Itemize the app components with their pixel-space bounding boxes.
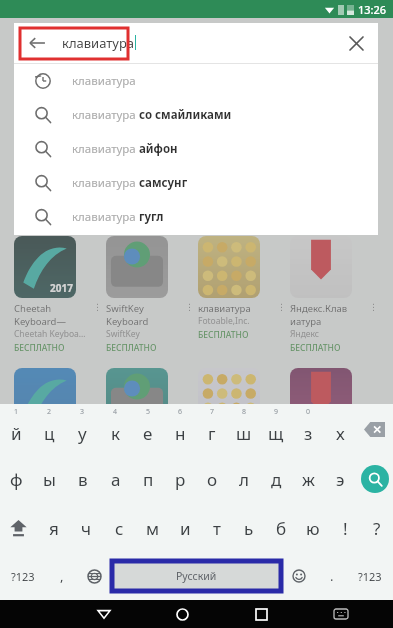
button[interactable]: в xyxy=(66,454,99,504)
button[interactable]: Emoji xyxy=(281,552,316,600)
button[interactable]: я xyxy=(37,504,70,552)
button[interactable]: х xyxy=(324,404,356,454)
button[interactable]: Back xyxy=(14,23,378,63)
staticText: а xyxy=(111,468,121,491)
staticText: я xyxy=(49,517,59,540)
button[interactable]: 5 xyxy=(132,404,164,454)
staticText: х xyxy=(336,422,345,445)
staticText: иатура xyxy=(290,315,322,328)
button[interactable]: клавиатура xyxy=(14,64,378,98)
button[interactable]: Яндекс.Клав xyxy=(290,236,378,354)
button[interactable]: Русский xyxy=(112,561,281,591)
staticText: ц xyxy=(44,422,55,445)
staticText: Fotoable,Inc. xyxy=(198,315,250,327)
staticText: самсунг xyxy=(139,175,188,191)
button[interactable]: ? xyxy=(361,504,393,552)
button[interactable] xyxy=(198,368,286,430)
staticText: 8 xyxy=(242,407,247,417)
staticText: Keyboard— xyxy=(14,315,66,328)
staticText: ⋮ xyxy=(185,302,194,312)
button[interactable]: э xyxy=(324,454,356,504)
button[interactable]: Back xyxy=(65,600,143,628)
button[interactable]: клавиатура xyxy=(14,98,378,132)
staticText: ? xyxy=(373,517,381,540)
button[interactable]: д xyxy=(260,454,292,504)
button[interactable]: . xyxy=(316,552,347,600)
button[interactable]: 9 xyxy=(260,404,292,454)
button[interactable]: клавиатура xyxy=(14,200,378,234)
button[interactable]: SwiftKey xyxy=(106,236,194,354)
button[interactable]: р xyxy=(164,454,196,504)
button[interactable]: Home xyxy=(143,600,222,628)
staticText: клавиатура xyxy=(72,175,139,191)
staticText: г xyxy=(208,422,216,445)
button[interactable]: Backspace xyxy=(356,404,393,454)
button[interactable]: 1 xyxy=(0,404,33,454)
staticText: айфон xyxy=(139,141,178,157)
button[interactable] xyxy=(14,368,102,430)
button[interactable]: б xyxy=(265,504,297,552)
button[interactable]: Change language xyxy=(77,552,112,600)
button[interactable]: ! xyxy=(329,504,361,552)
staticText: Keyboard xyxy=(106,315,149,328)
button[interactable]: и xyxy=(169,504,201,552)
button[interactable]: ?123 xyxy=(0,552,46,600)
staticText: у xyxy=(78,422,87,445)
staticText: э xyxy=(336,468,345,491)
button[interactable]: ч xyxy=(70,504,103,552)
staticText: к xyxy=(111,422,121,445)
button[interactable]: 0 xyxy=(292,404,324,454)
button[interactable]: ?123 xyxy=(347,552,393,600)
button[interactable]: м xyxy=(136,504,169,552)
button[interactable]: 4 xyxy=(99,404,132,454)
staticText: ⋮ xyxy=(93,302,102,312)
button[interactable]: с xyxy=(103,504,136,552)
staticText: ⋮ xyxy=(369,302,378,312)
staticText: щ xyxy=(268,422,284,445)
button[interactable]: ф xyxy=(0,454,33,504)
button[interactable] xyxy=(290,368,378,430)
button[interactable]: клавиатура xyxy=(14,166,378,200)
staticText: Cheetah Keyboa… xyxy=(14,328,86,340)
button[interactable]: л xyxy=(228,454,260,504)
button[interactable]: Back xyxy=(26,32,48,54)
staticText: ю xyxy=(306,517,320,540)
button[interactable]: 7 xyxy=(196,404,228,454)
button[interactable]: ь xyxy=(233,504,265,552)
button[interactable]: Shift xyxy=(0,504,37,552)
staticText: БЕСПЛАТНО xyxy=(106,342,157,354)
button[interactable]: , xyxy=(46,552,77,600)
button[interactable]: 3 xyxy=(66,404,99,454)
button[interactable]: о xyxy=(196,454,228,504)
staticText: клавиатура xyxy=(198,302,251,315)
button[interactable]: п xyxy=(132,454,164,504)
staticText: 2 xyxy=(47,407,52,417)
staticText: ф xyxy=(10,468,23,491)
staticText: БЕСПЛАТНО xyxy=(198,329,249,341)
button[interactable] xyxy=(106,368,194,430)
staticText: 1 xyxy=(14,407,19,417)
staticText: ы xyxy=(43,468,56,491)
button[interactable]: т xyxy=(201,504,233,552)
button[interactable]: клавиатура xyxy=(198,236,286,341)
button[interactable]: Search xyxy=(356,454,393,504)
button[interactable]: Clear xyxy=(344,31,368,55)
button[interactable]: Recent apps xyxy=(222,600,301,628)
button[interactable]: 2017 xyxy=(14,236,102,354)
button[interactable]: 8 xyxy=(228,404,260,454)
staticText: и xyxy=(180,517,191,540)
staticText: БЕСПЛАТНО xyxy=(14,342,65,354)
staticText: 0 xyxy=(306,407,311,417)
button[interactable]: клавиатура xyxy=(14,132,378,166)
button[interactable]: Keyboard indicator xyxy=(301,600,380,628)
staticText: . xyxy=(330,567,334,585)
button[interactable]: ы xyxy=(33,454,66,504)
button[interactable]: ю xyxy=(297,504,329,552)
button[interactable]: ж xyxy=(292,454,324,504)
button[interactable]: 6 xyxy=(164,404,196,454)
staticText: 9 xyxy=(274,407,279,417)
staticText: ⋮ xyxy=(277,302,286,312)
button[interactable]: 2 xyxy=(33,404,66,454)
staticText: м xyxy=(146,517,160,540)
button[interactable]: а xyxy=(99,454,132,504)
